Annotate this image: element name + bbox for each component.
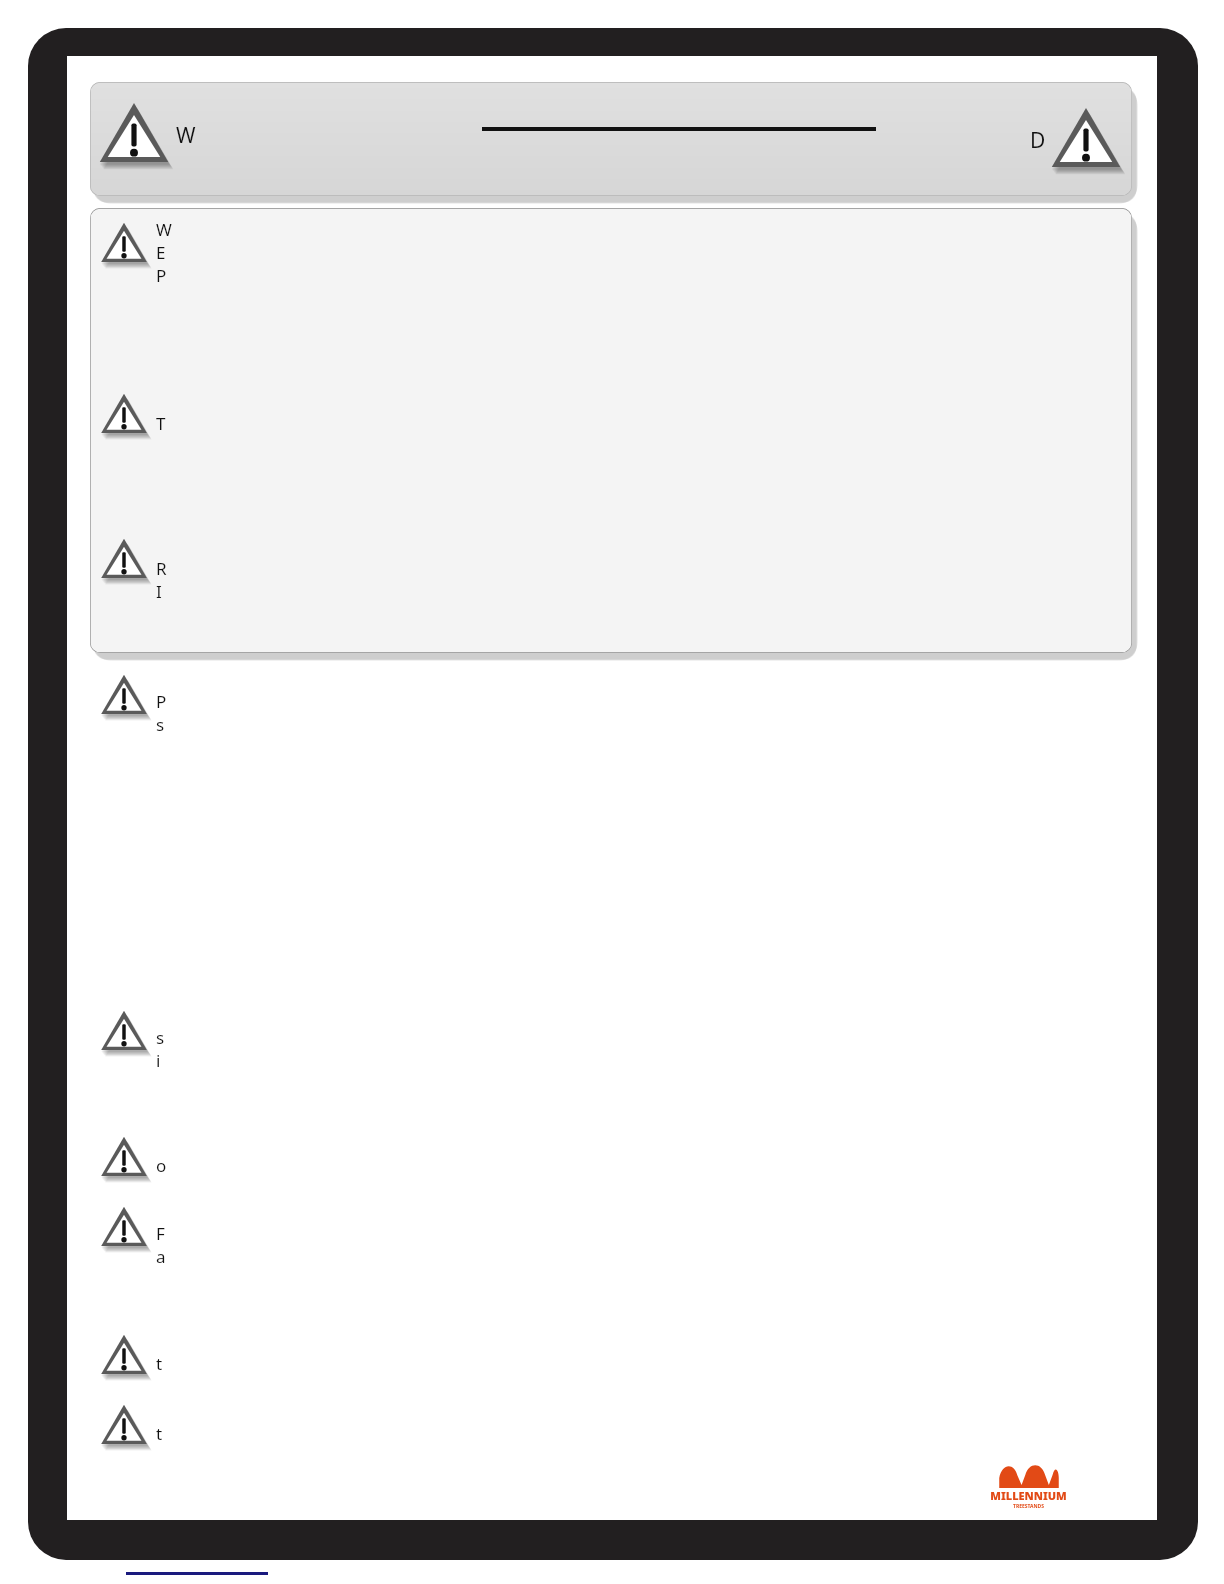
staticText: P [156,264,167,287]
staticText: T [156,412,166,435]
staticText: t [156,1422,163,1445]
button[interactable]: Warning [90,82,1132,196]
other: Warning [100,1402,148,1450]
staticText: P [156,690,167,713]
staticText: o [156,1154,167,1177]
staticText: s [156,1026,165,1049]
other: Warning [100,220,148,268]
staticText: TREESTANDS [1013,1503,1044,1510]
staticText: R [156,557,167,580]
button[interactable]: Millennium Treestands logo [990,1462,1067,1510]
button[interactable]: Warning [100,1402,163,1450]
button[interactable]: Warning [98,99,196,171]
button[interactable]: Warning [100,391,166,439]
other: Warning [1050,104,1122,176]
other: Warning [100,1134,148,1182]
staticText: F [156,1222,165,1245]
button[interactable]: D [1030,104,1122,176]
other: Warning [100,1008,148,1056]
button[interactable]: Warning [100,1204,166,1252]
staticText: W [156,218,172,241]
staticText: I [156,580,162,603]
staticText: W [176,121,196,150]
button[interactable]: Warning [100,1134,167,1182]
other: Warning [100,391,148,439]
staticText: s [156,713,165,736]
staticText: t [156,1352,163,1375]
staticText: a [156,1245,166,1268]
button[interactable]: Warning [100,1332,163,1380]
staticText: D [1030,126,1046,155]
staticText: i [156,1049,161,1072]
other: Warning [100,1332,148,1380]
button[interactable]: Warning [90,208,1132,653]
staticText: E [156,241,166,264]
other: Warning [100,1204,148,1252]
button[interactable]: Warning [100,672,167,720]
button[interactable]: Warning [100,536,167,584]
other: Warning [100,672,148,720]
other: Warning [100,536,148,584]
other: Warning [98,99,170,171]
button[interactable]: Warning [100,1008,165,1056]
button[interactable]: Warning [100,220,172,289]
staticText: MILLENNIUM [990,1488,1067,1503]
